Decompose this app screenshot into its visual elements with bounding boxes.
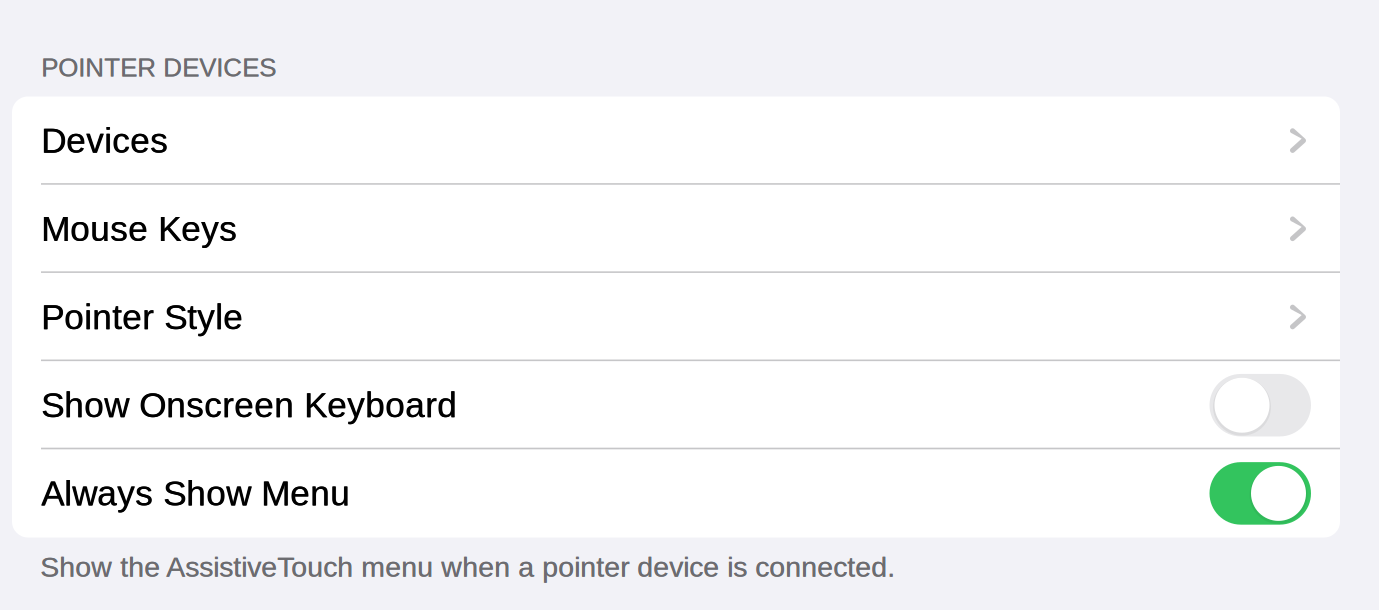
staticText: Show Onscreen Keyboard <box>41 386 457 425</box>
staticText: Show the AssistiveTouch menu when a poin… <box>40 551 895 583</box>
button[interactable]: Devices <box>12 96 1340 185</box>
staticText: Devices <box>41 121 168 160</box>
staticText: Pointer Style <box>41 297 243 337</box>
button[interactable]: Show Onscreen Keyboard <box>12 361 1340 449</box>
button[interactable]: Always Show Menu <box>12 449 1340 537</box>
staticText: Always Show Menu <box>41 474 350 513</box>
staticText: Show the AssistiveTouch menu when a poin… <box>40 551 895 583</box>
staticText: POINTER DEVICES <box>41 53 276 82</box>
staticText: Devices <box>41 121 168 160</box>
staticText: Mouse Keys <box>41 209 237 248</box>
staticText: Mouse Keys <box>41 209 237 248</box>
button[interactable]: Pointer Style <box>12 273 1340 361</box>
button[interactable]: Mouse Keys <box>12 185 1340 273</box>
staticText: Pointer Style <box>41 297 243 337</box>
staticText: POINTER DEVICES <box>41 53 276 82</box>
staticText: Always Show Menu <box>41 474 350 513</box>
staticText: Show Onscreen Keyboard <box>41 386 457 425</box>
